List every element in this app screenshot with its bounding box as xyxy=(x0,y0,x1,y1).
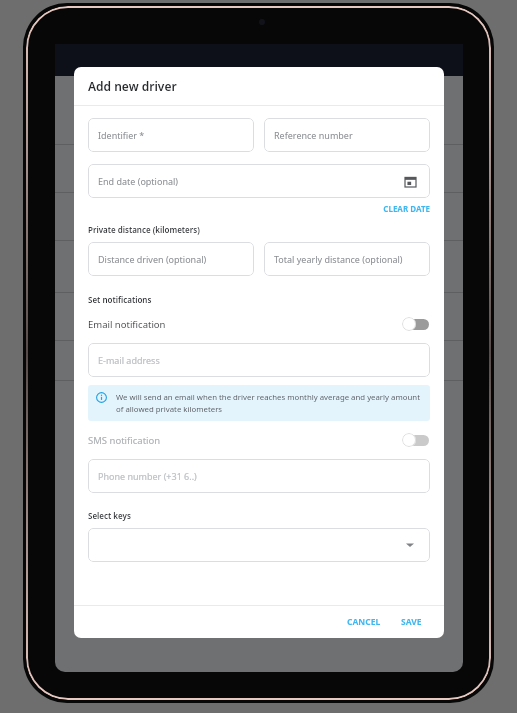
button[interactable]: CANCEL xyxy=(341,612,387,632)
button[interactable]: Email notification xyxy=(88,314,430,334)
button[interactable]: CLEAR DATE xyxy=(88,203,430,214)
staticText: SAVE xyxy=(401,616,422,628)
button[interactable]: SAVE xyxy=(395,612,428,632)
button[interactable]: Phone number (+31 6..) xyxy=(88,459,430,493)
staticText: Email notification xyxy=(88,318,166,331)
staticText: E-mail address xyxy=(98,354,160,366)
staticText: End date (optional) xyxy=(98,175,179,187)
button[interactable]: Distance driven (optional) xyxy=(88,242,254,276)
staticText: Reference number xyxy=(274,129,353,141)
button[interactable]: Pick date xyxy=(400,171,420,191)
button[interactable]: E-mail address xyxy=(88,343,430,377)
button[interactable]: Toggle SMS notification xyxy=(396,430,430,450)
button[interactable]: End date (optional) xyxy=(88,164,430,198)
staticText: Set notifications xyxy=(88,294,152,305)
button[interactable]: Toggle email notification xyxy=(396,314,430,334)
button[interactable]: SMS notification xyxy=(88,430,430,450)
staticText: CLEAR DATE xyxy=(383,203,430,214)
staticText: Distance driven (optional) xyxy=(98,253,207,265)
staticText: Identifier * xyxy=(98,129,145,141)
button[interactable]: Reference number xyxy=(264,118,430,152)
staticText: Select keys xyxy=(88,510,131,521)
staticText: Private distance (kilometers) xyxy=(88,224,200,235)
button[interactable]: Open dropdown xyxy=(400,535,420,555)
staticText: Total yearly distance (optional) xyxy=(274,253,403,265)
button[interactable]: Open dropdown xyxy=(88,528,430,562)
button[interactable]: Identifier * xyxy=(88,118,254,152)
staticText: SMS notification xyxy=(88,434,161,447)
button[interactable]: Total yearly distance (optional) xyxy=(264,242,430,276)
staticText: We will send an email when the driver re… xyxy=(116,392,422,414)
staticText: Phone number (+31 6..) xyxy=(98,470,197,482)
staticText: CANCEL xyxy=(347,616,381,628)
staticText: Add new driver xyxy=(88,78,177,94)
